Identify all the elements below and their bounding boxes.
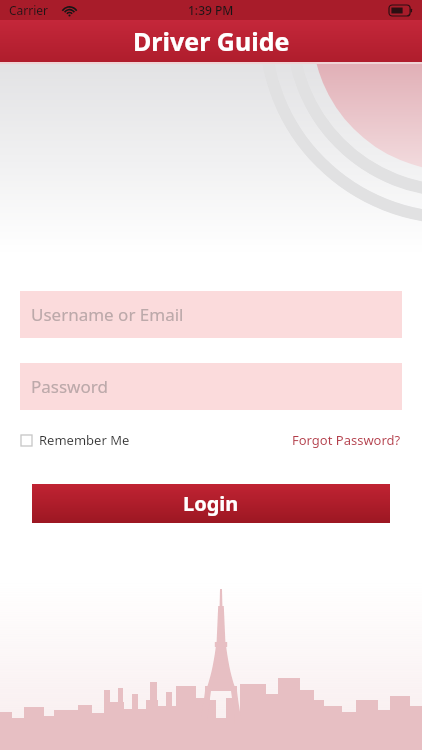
button[interactable]: Forgot Password? [292,426,401,454]
staticText: Login [183,490,239,517]
button[interactable]: Remember Me [21,426,130,454]
staticText: Remember Me [39,431,130,449]
button[interactable]: Login [32,484,390,523]
staticText: 1:39 PM [188,2,234,18]
button[interactable]: Username or Email [20,291,402,338]
other: Battery [389,5,413,16]
staticText: Carrier [9,2,49,18]
button[interactable]: Password [20,363,402,410]
other: Wi-Fi signal [62,5,77,16]
staticText: Forgot Password? [292,431,401,449]
staticText: Password [31,375,108,398]
staticText: Driver Guide [133,24,290,58]
staticText: Username or Email [31,303,184,326]
